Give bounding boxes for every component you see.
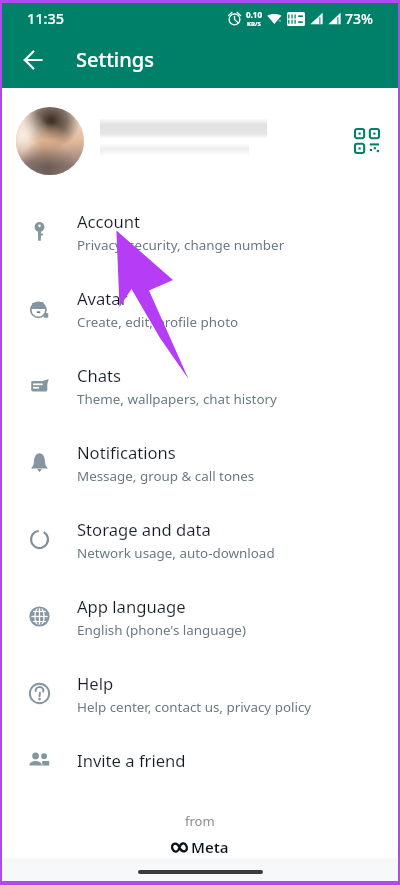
- staticText: Invite a friend: [77, 749, 186, 772]
- staticText: Storage and data: [77, 518, 211, 541]
- staticText: Help: [77, 672, 114, 695]
- button[interactable]: Back: [11, 38, 55, 82]
- button[interactable]: Notifications: [2, 424, 398, 501]
- staticText: 0.10: [246, 9, 262, 20]
- staticText: from: [185, 812, 215, 830]
- staticText: Message, group & call tones: [77, 467, 255, 485]
- staticText: Settings: [76, 46, 154, 73]
- button[interactable]: Help: [2, 655, 398, 732]
- staticText: Meta: [191, 837, 229, 857]
- button[interactable]: Storage and data: [2, 501, 398, 578]
- staticText: Account: [77, 210, 141, 233]
- staticText: App language: [77, 595, 186, 618]
- staticText: Network usage, auto-download: [77, 544, 275, 562]
- staticText: 73%: [345, 9, 373, 28]
- staticText: Notifications: [77, 441, 176, 464]
- staticText: KB/S: [247, 20, 261, 28]
- button[interactable]: Invite a friend: [2, 732, 398, 788]
- button[interactable]: Chats: [2, 347, 398, 424]
- staticText: Help center, contact us, privacy policy: [77, 698, 312, 716]
- button[interactable]: App language: [2, 578, 398, 655]
- staticText: Privacy, security, change number: [77, 236, 285, 254]
- staticText: Create, edit, profile photo: [77, 313, 239, 331]
- button[interactable]: QR code: [2, 88, 398, 193]
- button[interactable]: Account: [2, 193, 398, 270]
- staticText: 11:35: [27, 8, 65, 28]
- staticText: Chats: [77, 364, 121, 387]
- staticText: Avatar: [77, 287, 128, 310]
- staticText: Theme, wallpapers, chat history: [77, 390, 277, 408]
- button[interactable]: QR code: [349, 123, 385, 159]
- button[interactable]: Avatar: [2, 270, 398, 347]
- staticText: English (phone's language): [77, 621, 246, 639]
